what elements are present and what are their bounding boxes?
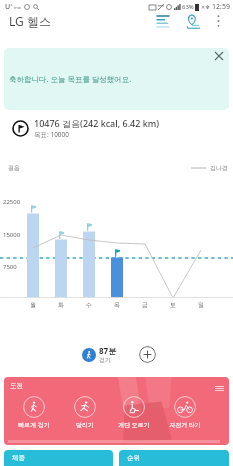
staticText: 일 bbox=[198, 301, 204, 309]
staticText: 7500 bbox=[3, 263, 17, 271]
staticText: 월 bbox=[30, 301, 36, 309]
staticText: 도전 bbox=[10, 382, 23, 390]
staticText: 빠르게 걷기 bbox=[18, 421, 50, 429]
staticText: 화 bbox=[58, 301, 64, 309]
staticText: 체중 bbox=[12, 454, 25, 462]
button[interactable]: 체중 bbox=[4, 450, 113, 466]
staticText: ✕❆ bbox=[201, 4, 210, 10]
staticText: 목표: 10000 bbox=[34, 130, 70, 139]
staticText: 22500 bbox=[3, 198, 21, 206]
staticText: 수 bbox=[86, 301, 92, 309]
staticText: 순위 bbox=[127, 454, 140, 462]
staticText: 축하합니다. 오늘 목표를 달성했어요. bbox=[9, 74, 132, 84]
staticText: mix bbox=[14, 5, 21, 10]
button[interactable]: 달리기 bbox=[61, 396, 109, 436]
staticText: 걸음 bbox=[8, 164, 20, 172]
button[interactable]: More options bbox=[208, 11, 228, 31]
button[interactable]: Close banner bbox=[212, 49, 226, 63]
staticText: 금 bbox=[142, 301, 148, 309]
button[interactable]: 순위 bbox=[119, 450, 229, 466]
staticText: 15000 bbox=[3, 231, 21, 239]
staticText: 63% bbox=[182, 3, 194, 11]
staticText: 87분 bbox=[99, 345, 117, 356]
button[interactable]: Add activity bbox=[139, 346, 156, 363]
button[interactable]: 계단 오르기 bbox=[110, 396, 158, 436]
staticText: 자전거 타기 bbox=[169, 421, 201, 429]
staticText: 계단 오르기 bbox=[118, 421, 150, 429]
staticText: 10476 걸음(242 kcal, 6.42 km) bbox=[34, 117, 160, 129]
staticText: 토 bbox=[170, 301, 176, 309]
button[interactable]: Location bbox=[182, 10, 204, 32]
button[interactable]: Challenge menu bbox=[213, 382, 225, 394]
staticText: 걷기 bbox=[99, 356, 111, 364]
button[interactable]: Ranking list bbox=[152, 10, 174, 32]
button[interactable]: 빠르게 걷기 bbox=[10, 396, 58, 436]
staticText: U⁺ bbox=[5, 2, 13, 12]
staticText: 김나경 bbox=[210, 164, 228, 172]
button[interactable]: 자전거 타기 bbox=[161, 396, 209, 436]
staticText: 달리기 bbox=[76, 421, 94, 429]
staticText: 12:59 bbox=[212, 2, 230, 12]
staticText: LG 헬스 bbox=[9, 13, 51, 29]
staticText: 목 bbox=[114, 301, 120, 309]
